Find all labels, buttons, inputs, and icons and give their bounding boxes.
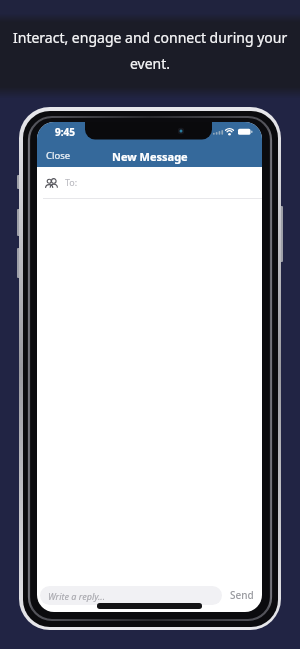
staticText: 9:45 bbox=[55, 125, 75, 139]
staticText: Interact, engage and connect during your bbox=[13, 28, 288, 47]
staticText: Close bbox=[46, 149, 71, 162]
button[interactable]: Write a reply... bbox=[40, 586, 222, 605]
button[interactable]: Send bbox=[225, 584, 262, 606]
staticText: Write a reply... bbox=[48, 590, 105, 602]
staticText: Send bbox=[230, 588, 254, 602]
staticText: To: bbox=[65, 176, 78, 188]
staticText: event. bbox=[130, 54, 171, 73]
button[interactable]: Close bbox=[41, 146, 77, 164]
button[interactable]: To: bbox=[37, 167, 262, 198]
staticText: New Message bbox=[112, 149, 188, 164]
